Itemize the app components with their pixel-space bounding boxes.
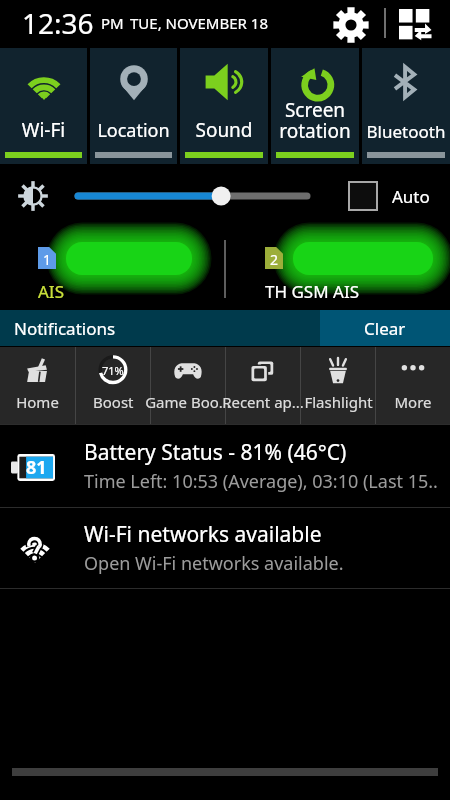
button[interactable]: More: [376, 347, 450, 424]
button[interactable]: Brightness: [70, 180, 315, 212]
staticText: TUE, NOVEMBER 18: [130, 13, 268, 33]
button[interactable]: 81: [0, 424, 450, 507]
button[interactable]: Game Boo...: [151, 347, 225, 424]
button[interactable]: 71%: [76, 347, 150, 424]
staticText: Location: [90, 118, 177, 143]
staticText: Game Boo...: [145, 392, 231, 412]
staticText: Screen rotation: [271, 97, 359, 143]
staticText: 2: [270, 250, 279, 269]
button[interactable]: TH GSM AIS: [265, 280, 359, 303]
staticText: 71%: [102, 363, 124, 378]
staticText: 81: [26, 455, 47, 480]
staticText: 12:36: [22, 4, 94, 42]
button[interactable]: Bluetooth: [362, 48, 450, 164]
button[interactable]: Auto: [348, 181, 430, 211]
staticText: Boost: [93, 392, 134, 412]
button[interactable]: 1: [38, 247, 56, 269]
staticText: Open Wi-Fi networks available.: [84, 551, 344, 576]
staticText: Time Left: 10:53 (Average), 03:10 (Last …: [84, 469, 438, 494]
button[interactable]: AIS: [38, 280, 64, 303]
button[interactable]: Sound: [180, 48, 268, 164]
button[interactable]: Screen rotation: [271, 48, 359, 164]
staticText: More: [394, 392, 432, 412]
staticText: Auto: [392, 185, 430, 208]
staticText: Flashlight: [304, 392, 373, 412]
button[interactable]: Notifications: [0, 310, 320, 346]
staticText: Notifications: [14, 317, 116, 340]
staticText: Sound: [180, 117, 268, 143]
button[interactable]: Flashlight: [301, 347, 375, 424]
button[interactable]: Location: [90, 48, 177, 164]
staticText: Clear: [364, 317, 406, 340]
button[interactable]: Wi-Fi networks available: [0, 507, 450, 589]
staticText: Recent ap...: [222, 392, 304, 412]
button[interactable]: Settings: [318, 0, 384, 46]
button[interactable]: Home: [0, 347, 75, 424]
staticText: PM: [101, 13, 124, 33]
staticText: Bluetooth: [362, 120, 450, 143]
staticText: Wi-Fi networks available: [84, 520, 322, 549]
staticText: Wi-Fi: [0, 117, 87, 143]
staticText: 1: [43, 250, 52, 269]
button[interactable]: Quick settings: [386, 0, 444, 46]
button[interactable]: Clear: [320, 310, 450, 346]
staticText: Home: [16, 392, 59, 412]
staticText: Battery Status - 81% (46°C): [84, 438, 347, 467]
button[interactable]: Wi-Fi: [0, 48, 87, 164]
button[interactable]: 2: [265, 247, 283, 269]
button[interactable]: Recent ap...: [226, 347, 300, 424]
